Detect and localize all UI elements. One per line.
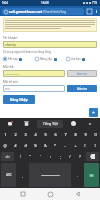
button[interactable]: - — [61, 141, 69, 150]
button[interactable]: 3 — [21, 130, 29, 139]
button[interactable]: ( — [81, 141, 89, 150]
staticText: =\< — [5, 155, 10, 159]
staticText: kiểm tra — [77, 87, 88, 91]
staticText: Sử dụng ngày tài khoản bạn đang đăng — [3, 50, 52, 54]
button[interactable]: " — [26, 152, 34, 161]
button[interactable]: : — [46, 152, 54, 161]
staticText: 1 — [4, 132, 7, 137]
button[interactable]: Tiếng Việt — [37, 120, 63, 128]
button[interactable]: soli.gamethuon.net — [2, 8, 84, 15]
staticText: Gia hạn — [71, 57, 81, 61]
button[interactable]: ' — [36, 152, 44, 161]
staticText: ? — [79, 154, 81, 159]
button[interactable]: ; — [56, 152, 64, 161]
button[interactable]: % — [31, 141, 39, 150]
staticText: Đăng Nhập — [10, 98, 28, 102]
button[interactable]: ! — [16, 152, 24, 161]
staticText: 3 — [24, 132, 27, 137]
button[interactable]: . — [73, 163, 82, 187]
staticText: ) — [94, 143, 96, 148]
staticText: ————— — [5, 72, 20, 76]
staticText: ! — [20, 154, 21, 159]
button[interactable]: # — [11, 141, 19, 150]
staticText: nhanvip — [5, 43, 16, 47]
button[interactable]: Back — [73, 189, 83, 199]
button[interactable]: Gia hạn — [66, 57, 97, 61]
button[interactable]: Clipboard — [6, 119, 15, 128]
staticText: Kết nạp — [8, 57, 18, 61]
button[interactable]: Recents — [18, 189, 28, 199]
button[interactable]: Delete — [22, 119, 31, 128]
staticText: 0 — [94, 132, 97, 137]
staticText: ( — [84, 143, 86, 148]
staticText: @ — [3, 143, 7, 148]
staticText: Nâng cấp — [40, 57, 53, 61]
staticText: * — [54, 143, 56, 148]
button[interactable]: nhanvip — [3, 41, 97, 48]
button[interactable]: kiểm tra — [67, 70, 97, 77]
button[interactable]: Kết nạp — [3, 57, 35, 61]
staticText: " — [29, 154, 31, 159]
staticText: ; — [60, 154, 61, 159]
button[interactable]: 2 — [11, 130, 19, 139]
button[interactable]: 0 — [91, 130, 99, 139]
staticText: kiểm tra — [77, 72, 88, 76]
staticText: : — [50, 154, 51, 159]
staticText: - — [64, 143, 66, 148]
staticText: , — [22, 173, 23, 178]
button[interactable]: 7 — [61, 130, 69, 139]
staticText: 7 — [64, 132, 67, 137]
staticText: % — [34, 143, 37, 148]
button[interactable]: Enter — [84, 163, 99, 187]
staticText: seri — [5, 87, 10, 91]
staticText: ' — [40, 154, 41, 159]
button[interactable]: + — [71, 141, 79, 150]
staticText: đ — [24, 143, 27, 148]
staticText: . — [77, 173, 78, 178]
button[interactable]: @ — [1, 141, 9, 150]
button[interactable]: 1 — [1, 130, 9, 139]
button[interactable]: ABC — [1, 163, 16, 187]
button[interactable]: 4 — [31, 130, 39, 139]
button[interactable]: seri — [3, 85, 65, 92]
staticText: Tài khoản — [3, 36, 18, 40]
staticText: 2 — [14, 132, 17, 137]
button[interactable]: Emoji — [69, 119, 78, 128]
button[interactable]: More options — [85, 119, 94, 128]
button[interactable]: ? — [76, 152, 84, 161]
button[interactable]: Space — [29, 163, 71, 187]
button[interactable]: ————— — [3, 70, 65, 77]
button[interactable]: 8 — [71, 130, 79, 139]
button[interactable]: / — [66, 152, 74, 161]
button[interactable]: kiểm tra — [67, 85, 97, 92]
staticText: 4 — [34, 132, 37, 137]
staticText: 6 — [54, 132, 57, 137]
staticText: 5:04 — [2, 1, 8, 5]
button[interactable]: Đăng Nhập — [3, 95, 35, 104]
button[interactable]: Nâng cấp — [35, 57, 66, 61]
staticText: + — [74, 143, 77, 148]
staticText: /thanhtich/log — [43, 9, 66, 14]
staticText: # — [14, 143, 17, 148]
button[interactable]: * — [51, 141, 59, 150]
staticText: soli.gamethuon.net — [9, 9, 43, 14]
button[interactable]: 6 — [51, 130, 59, 139]
button[interactable]: Tabs — [86, 8, 92, 14]
staticText: ABC — [6, 173, 12, 177]
button[interactable]: Scroll to top — [89, 108, 98, 117]
staticText: 9 — [84, 132, 87, 137]
button[interactable]: & — [41, 141, 49, 150]
button[interactable]: 9 — [81, 130, 89, 139]
button[interactable]: Backspace — [86, 152, 99, 161]
button[interactable]: , — [18, 163, 27, 187]
button[interactable]: 5 — [41, 130, 49, 139]
button[interactable]: Home — [45, 189, 55, 199]
staticText: Tiếng Việt — [43, 122, 58, 126]
button[interactable]: =\< — [1, 152, 14, 161]
staticText: Mã số seri — [3, 80, 19, 84]
button[interactable]: đ — [21, 141, 29, 150]
staticText: 8 — [74, 132, 77, 137]
button[interactable]: Menu — [94, 6, 98, 16]
button[interactable]: ) — [91, 141, 99, 150]
staticText: Mã thẻ — [3, 65, 14, 69]
